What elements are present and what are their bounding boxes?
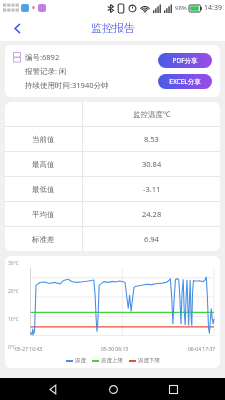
staticText: 30.84: [142, 159, 162, 169]
button[interactable]: EXCEL分享: [158, 74, 212, 89]
staticText: -3.11: [143, 184, 161, 194]
staticText: 监控温度℃: [133, 109, 171, 119]
staticText: 0℃: [8, 344, 16, 351]
staticText: 8.53: [144, 134, 159, 144]
staticText: 30℃: [8, 260, 19, 267]
staticText: 10℃: [8, 316, 19, 323]
button[interactable]: Home: [96, 378, 130, 400]
staticText: 温度: [75, 357, 86, 364]
staticText: 06-04 17:37: [188, 346, 216, 353]
staticText: 14:39: [204, 3, 222, 13]
staticText: 05-27 10:43: [15, 346, 43, 353]
staticText: 98%: [175, 4, 187, 12]
staticText: 标准差: [32, 235, 55, 244]
staticText: 24.28: [142, 209, 162, 219]
staticText: PDF分享: [172, 56, 198, 65]
button[interactable]: Recent apps: [156, 378, 190, 400]
staticText: 20℃: [8, 288, 19, 295]
button[interactable]: Back: [36, 378, 70, 400]
staticText: 编号:6892: [25, 52, 60, 62]
staticText: 平均值: [32, 210, 55, 219]
staticText: 最高值: [32, 160, 55, 169]
button[interactable]: Back: [6, 17, 28, 39]
staticText: 05-30 06:13: [101, 346, 129, 353]
staticText: 当前值: [32, 135, 55, 144]
staticText: 温度下限: [138, 357, 160, 364]
staticText: 温度上限: [101, 357, 123, 364]
staticText: 持续使用时间:31940分钟: [25, 80, 109, 90]
staticText: EXCEL分享: [169, 77, 201, 86]
staticText: 最低值: [32, 185, 55, 194]
staticText: 监控报告: [91, 21, 135, 35]
staticText: 报警记录: 闲: [25, 66, 67, 76]
staticText: 6.94: [144, 234, 159, 244]
button[interactable]: PDF分享: [158, 53, 212, 68]
